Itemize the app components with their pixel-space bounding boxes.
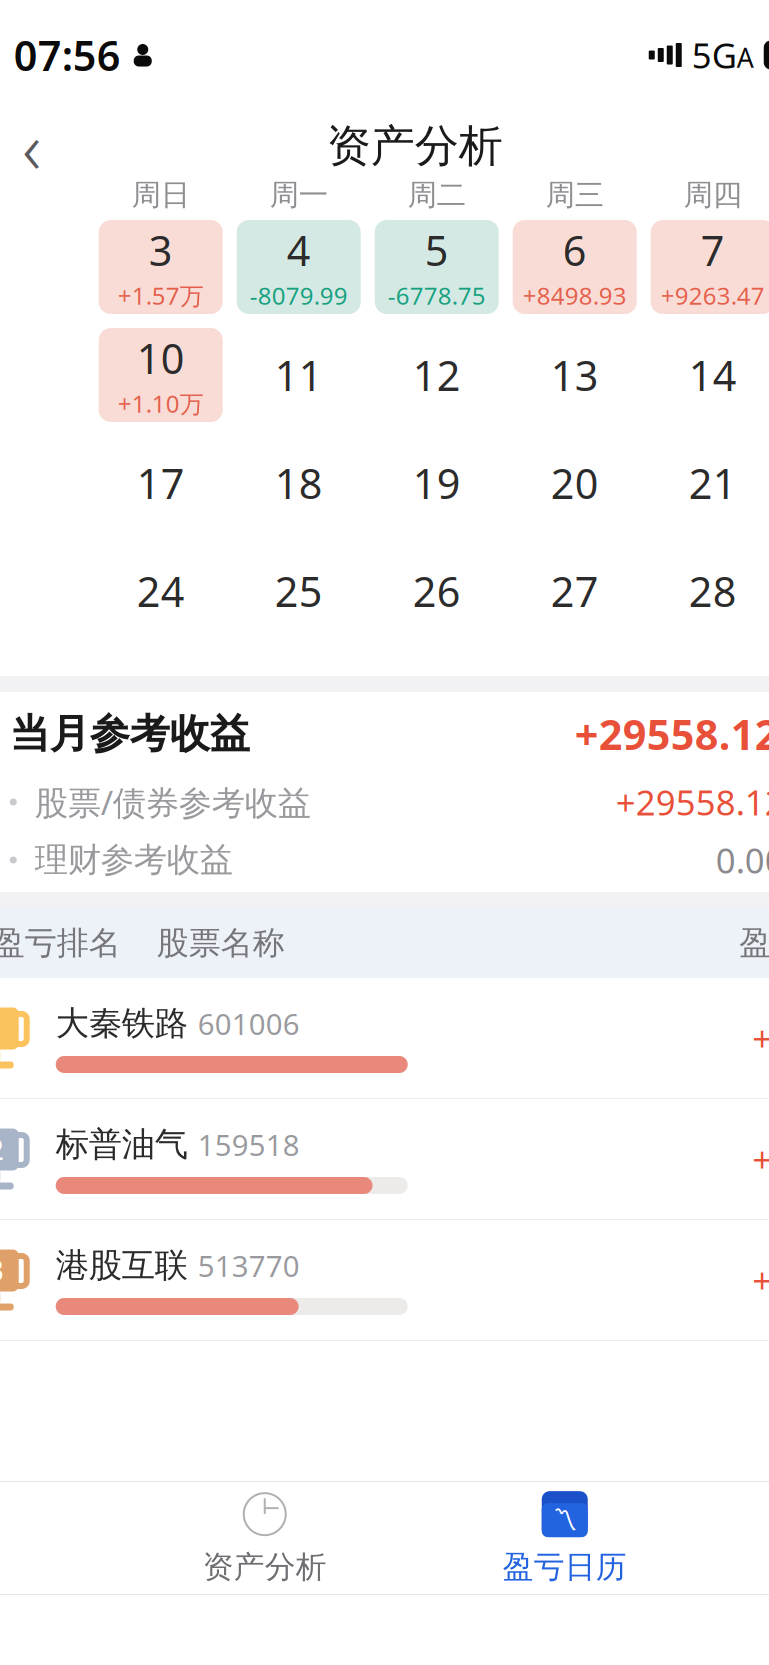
staticText: 07:56 — [14, 28, 121, 82]
staticText: +1.10万 — [118, 387, 204, 419]
staticText: 21 — [689, 456, 737, 510]
staticText: 周日 — [132, 177, 190, 213]
staticText: 股票名称 — [157, 923, 285, 963]
staticText: 4 — [287, 223, 311, 277]
button[interactable]: 14 — [651, 328, 769, 422]
button[interactable]: 26 — [375, 544, 499, 638]
staticText: 资产分析 — [327, 119, 503, 173]
staticText: 2 — [0, 1131, 4, 1168]
staticText: 513770 — [198, 1246, 300, 1285]
staticText: 大秦铁路 — [56, 1003, 188, 1044]
staticText: +4820.08 — [752, 1136, 769, 1182]
staticText: 20 — [551, 456, 599, 510]
staticText: 盈亏排名 — [0, 923, 121, 963]
button[interactable]: 19 — [375, 436, 499, 530]
staticText: -6778.75 — [388, 279, 486, 311]
button[interactable]: 21 — [651, 436, 769, 530]
staticText: 资产分析 — [203, 1548, 327, 1586]
button[interactable]: 11 — [237, 328, 361, 422]
staticText: -8079.99 — [250, 279, 348, 311]
staticText: 19 — [413, 456, 461, 510]
staticText: ‹ — [22, 98, 41, 194]
button[interactable]: 13 — [513, 328, 637, 422]
staticText: 27 — [551, 564, 599, 618]
staticText: 周三 — [546, 177, 604, 213]
staticText: 11 — [275, 348, 323, 402]
button[interactable]: 10 — [99, 328, 223, 422]
staticText: 盈亏金额 — [739, 923, 769, 963]
staticText: 周二 — [408, 177, 466, 213]
button[interactable]: 3 — [0, 1220, 769, 1340]
staticText: 13 — [551, 348, 599, 402]
button[interactable]: 3 — [99, 220, 223, 314]
button[interactable]: 2 — [0, 1099, 769, 1219]
staticText: 14 — [689, 348, 737, 402]
staticText: 7 — [701, 223, 725, 277]
staticText: +1.57万 — [118, 279, 204, 311]
staticText: 周四 — [684, 177, 742, 213]
staticText: 0.00元 — [716, 837, 769, 883]
button[interactable]: 28 — [651, 544, 769, 638]
staticText: +9263.47 — [661, 279, 765, 311]
staticText: 17 — [137, 456, 185, 510]
staticText: 周一 — [270, 177, 328, 213]
button[interactable]: 返回 — [0, 111, 72, 181]
staticText: 6 — [563, 223, 587, 277]
staticText: +5348.84 — [752, 1015, 769, 1061]
staticText: +8498.93 — [523, 279, 627, 311]
staticText: 港股互联 — [56, 1245, 188, 1286]
staticText: 盈亏日历 — [503, 1548, 627, 1586]
button[interactable]: 7 — [651, 220, 769, 314]
button[interactable]: 20 — [513, 436, 637, 530]
staticText: 3 — [149, 223, 173, 277]
button[interactable]: 18 — [237, 436, 361, 530]
staticText: 股票/债券参考收益 — [35, 780, 311, 824]
staticText: 3 — [0, 1252, 4, 1289]
button[interactable]: 27 — [513, 544, 637, 638]
staticText: 〽 — [552, 1507, 577, 1531]
staticText: A — [737, 40, 754, 75]
staticText: 601006 — [198, 1004, 300, 1043]
button[interactable]: 1 — [0, 978, 769, 1098]
staticText: 标普油气 — [56, 1124, 188, 1165]
staticText: +3701.91 — [752, 1257, 769, 1303]
button[interactable]: 12 — [375, 328, 499, 422]
staticText: 当月参考收益 — [10, 709, 250, 758]
button[interactable]: 5 — [375, 220, 499, 314]
staticText: 18 — [275, 456, 323, 510]
button[interactable]: 4 — [237, 220, 361, 314]
button[interactable]: 6 — [513, 220, 637, 314]
staticText: +29558.12元 — [616, 779, 769, 825]
staticText: 26 — [413, 564, 461, 618]
button[interactable]: 24 — [99, 544, 223, 638]
staticText: 24 — [137, 564, 185, 618]
button[interactable]: 17 — [99, 436, 223, 530]
staticText: 理财参考收益 — [35, 839, 233, 880]
staticText: 10 — [137, 331, 185, 385]
staticText: 159518 — [198, 1125, 300, 1164]
staticText: 5 — [425, 223, 449, 277]
staticText: 28 — [689, 564, 737, 618]
staticText: +29558.12元 — [575, 707, 769, 761]
button[interactable]: 25 — [237, 544, 361, 638]
button[interactable]: 资产分析 — [115, 1483, 415, 1593]
staticText: 25 — [275, 564, 323, 618]
staticText: 5G — [692, 32, 737, 78]
button[interactable]: 〽 — [415, 1483, 715, 1593]
staticText: 12 — [413, 348, 461, 402]
